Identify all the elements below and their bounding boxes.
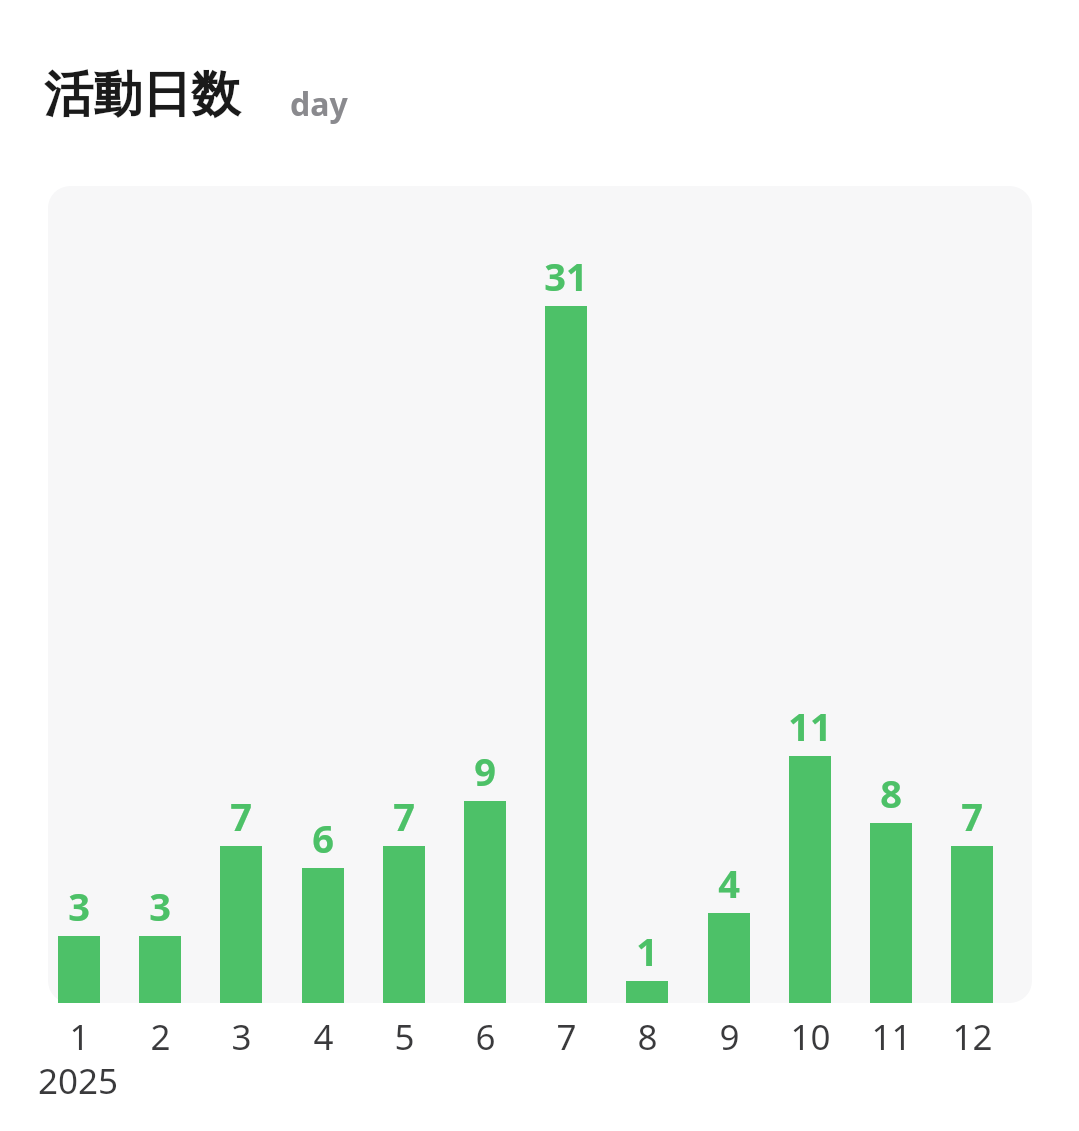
staticText: 7 [230, 790, 252, 840]
staticText: 9 [474, 745, 496, 795]
staticText: 7 [556, 1013, 577, 1061]
staticText: 1 [636, 925, 658, 975]
staticText: 7 [961, 790, 983, 840]
staticText: 31 [544, 250, 588, 300]
staticText: 4 [718, 857, 740, 907]
staticText: 5 [394, 1013, 415, 1061]
staticText: 活動日数 [44, 64, 240, 126]
staticText: 6 [312, 812, 334, 862]
staticText: 3 [231, 1013, 252, 1061]
staticText: 2 [150, 1013, 171, 1061]
staticText: 2025 [38, 1057, 119, 1105]
button[interactable]: Activity days bar chart [48, 186, 1032, 1003]
staticText: 9 [719, 1013, 740, 1061]
button[interactable]: 活動日数 [44, 60, 384, 130]
staticText: 6 [475, 1013, 496, 1061]
staticText: 10 [790, 1013, 831, 1061]
staticText: 1 [69, 1013, 90, 1061]
staticText: 7 [393, 790, 415, 840]
staticText: 8 [637, 1013, 658, 1061]
staticText: 11 [788, 700, 832, 750]
staticText: 11 [871, 1013, 912, 1061]
staticText: 3 [68, 880, 90, 930]
staticText: 8 [880, 767, 902, 817]
staticText: 4 [313, 1013, 334, 1061]
staticText: day [290, 82, 348, 126]
staticText: 3 [149, 880, 171, 930]
staticText: 12 [952, 1013, 993, 1061]
